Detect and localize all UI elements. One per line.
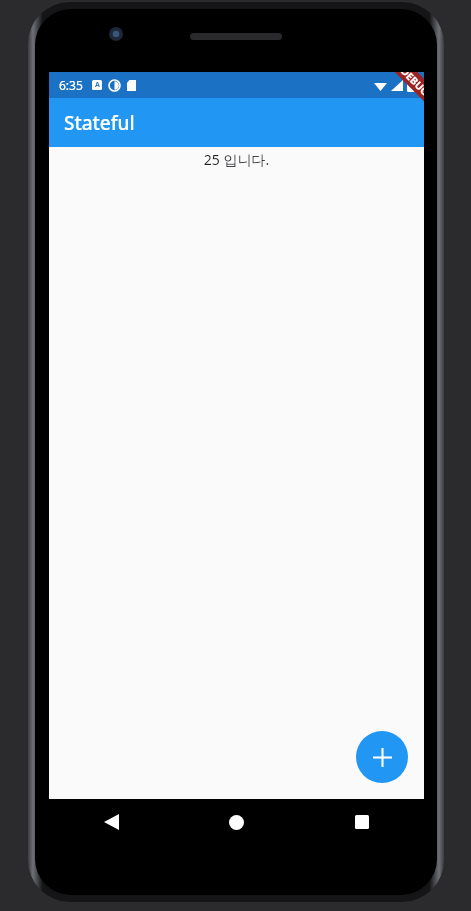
staticText: 6:35 (59, 77, 83, 93)
staticText: Stateful (64, 110, 135, 136)
staticText: 25 입니다. (49, 150, 424, 169)
staticText: A (95, 80, 100, 90)
staticText: DEBUG (398, 72, 424, 99)
button[interactable]: Recent apps (299, 799, 424, 845)
button[interactable]: Home (174, 799, 299, 845)
button[interactable]: Back (49, 799, 174, 845)
button[interactable]: Add (356, 731, 408, 783)
